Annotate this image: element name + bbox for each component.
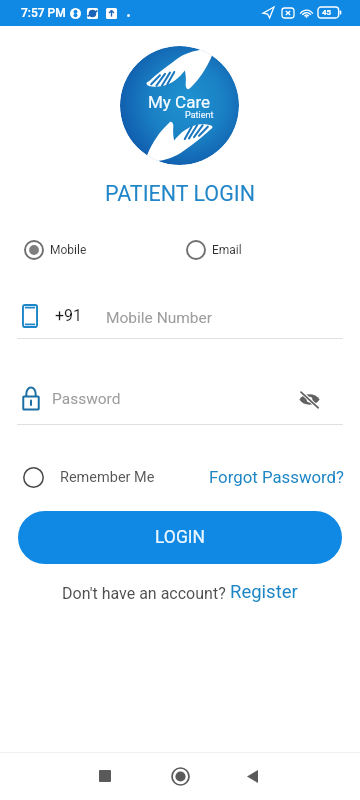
button[interactable]: Email: [186, 239, 242, 261]
staticText: Don't have an account?: [62, 584, 230, 603]
staticText: LOGIN: [155, 527, 206, 548]
button[interactable]: Back: [232, 756, 272, 796]
button[interactable]: Show password: [292, 382, 326, 416]
staticText: 45: [322, 8, 332, 17]
button[interactable]: Forgot Password?: [209, 467, 345, 487]
button[interactable]: Remember Me: [23, 464, 155, 491]
staticText: 7:57 PM: [21, 6, 66, 20]
staticText: Email: [212, 243, 242, 257]
staticText: +91: [55, 306, 83, 325]
button[interactable]: LOGIN: [18, 511, 342, 564]
staticText: Password: [52, 390, 121, 408]
button[interactable]: Mobile: [24, 239, 186, 261]
staticText: My Care: [148, 92, 211, 112]
staticText: Mobile Number: [106, 309, 213, 327]
button[interactable]: Recents: [85, 756, 125, 796]
staticText: Remember Me: [60, 469, 155, 486]
button[interactable]: Home: [160, 756, 200, 796]
staticText: PATIENT LOGIN: [0, 181, 360, 206]
staticText: Mobile: [50, 243, 87, 257]
staticText: Patient: [185, 110, 214, 121]
button[interactable]: Register: [230, 581, 298, 603]
